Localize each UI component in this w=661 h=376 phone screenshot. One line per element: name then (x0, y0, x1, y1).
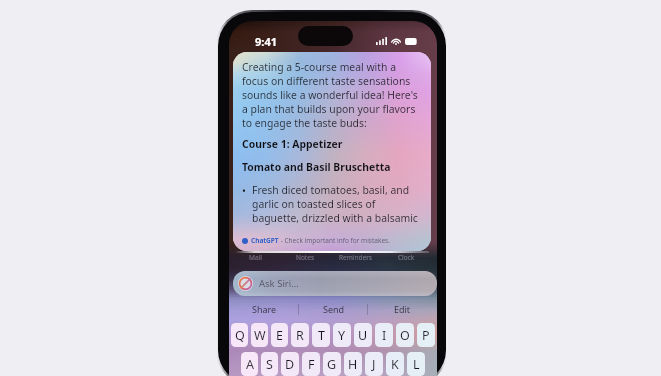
staticText: L (413, 356, 420, 373)
button[interactable]: Reminders (330, 250, 381, 264)
button[interactable]: Y (333, 323, 351, 347)
staticText: Fresh diced tomatoes, basil, and garlic … (252, 183, 422, 225)
button[interactable]: Siri disabled (233, 271, 437, 296)
staticText: J (372, 356, 376, 373)
button[interactable]: D (281, 352, 299, 376)
staticText: Edit (394, 303, 411, 315)
button[interactable]: W (251, 323, 268, 347)
staticText: ChatGPT (251, 236, 279, 245)
staticText: E (276, 327, 283, 344)
staticText: 9:41 (255, 34, 277, 49)
staticText: Y (338, 327, 346, 344)
button[interactable]: R (291, 323, 309, 347)
staticText: G (327, 356, 337, 373)
staticText: R (296, 327, 304, 344)
button[interactable]: Share (229, 298, 299, 320)
staticText: Ask Siri… (259, 277, 299, 290)
staticText: H (348, 356, 358, 373)
button[interactable]: A (241, 352, 258, 376)
button[interactable]: I (375, 323, 393, 347)
button[interactable]: J (365, 352, 383, 376)
staticText: Clock (398, 253, 415, 262)
button[interactable]: P (417, 323, 435, 347)
button[interactable]: Edit (368, 298, 437, 320)
staticText: D (285, 356, 295, 373)
button[interactable]: Mail (230, 250, 280, 264)
staticText: P (422, 327, 430, 344)
button[interactable]: K (386, 352, 404, 376)
button[interactable]: L (407, 352, 425, 376)
staticText: • (242, 184, 246, 198)
staticText: Share (252, 303, 277, 315)
staticText: Creating a 5-course meal with a focus on… (242, 60, 424, 130)
staticText: Notes (296, 253, 314, 262)
staticText: Send (323, 303, 345, 315)
staticText: K (391, 356, 399, 373)
button[interactable]: Q (231, 323, 248, 347)
button[interactable]: Clock (381, 250, 432, 264)
staticText: Mail (249, 253, 262, 262)
button[interactable]: S (261, 352, 278, 376)
button[interactable]: T (312, 323, 330, 347)
button[interactable]: F (302, 352, 320, 376)
staticText: O (400, 327, 410, 344)
button[interactable]: G (323, 352, 341, 376)
staticText: I (382, 327, 387, 344)
staticText: - Check important info for mistakes. (279, 236, 390, 245)
staticText: Q (235, 327, 245, 344)
staticText: F (308, 356, 315, 373)
staticText: A (246, 356, 254, 373)
button[interactable]: O (396, 323, 414, 347)
staticText: U (358, 327, 368, 344)
button[interactable]: Send (299, 298, 368, 320)
staticText: Tomato and Basil Bruschetta (242, 160, 391, 174)
staticText: Reminders (339, 253, 372, 262)
button[interactable]: Notes (280, 250, 330, 264)
button[interactable]: H (344, 352, 362, 376)
staticText: W (254, 327, 266, 344)
staticText: T (318, 327, 325, 344)
button[interactable]: U (354, 323, 372, 347)
staticText: Course 1: Appetizer (242, 137, 343, 151)
button[interactable]: E (271, 323, 288, 347)
other: Siri disabled (238, 276, 253, 291)
staticText: S (266, 356, 273, 373)
